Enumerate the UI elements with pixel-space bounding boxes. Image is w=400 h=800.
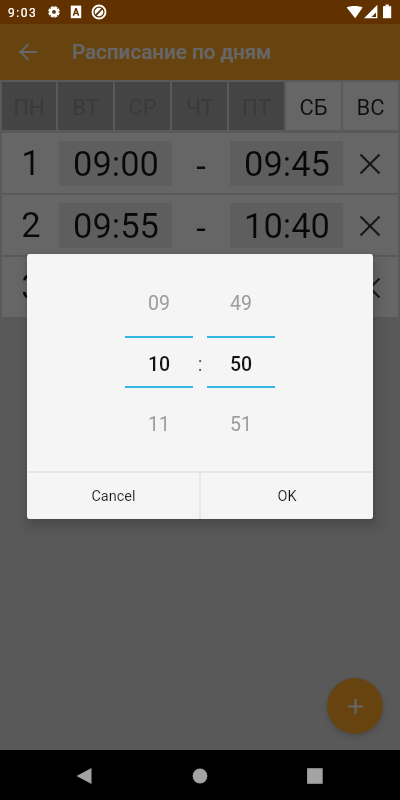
button[interactable]: Delete — [343, 133, 396, 193]
staticText: - — [196, 208, 206, 248]
staticText: 10:40 — [244, 206, 330, 246]
button[interactable]: 09:00 — [59, 141, 172, 186]
button[interactable]: 09:55 — [59, 203, 172, 248]
staticText: 9:03 — [8, 6, 38, 20]
staticText: OK — [277, 488, 297, 505]
staticText: 11 — [125, 413, 193, 436]
staticText: - — [196, 146, 206, 186]
button[interactable]: 10:50 — [59, 265, 172, 310]
button[interactable]: OK — [201, 473, 373, 519]
staticText: 09:45 — [244, 144, 330, 184]
staticText: 3 — [21, 267, 41, 307]
staticText: 09:00 — [73, 144, 159, 184]
button[interactable]: Delete — [343, 195, 396, 255]
staticText: : — [193, 353, 207, 376]
staticText: 10 — [125, 353, 193, 376]
staticText: ВС — [356, 95, 385, 121]
staticText: 09:55 — [73, 206, 159, 246]
staticText: 49 — [207, 292, 275, 315]
button[interactable]: Back — [0, 24, 56, 80]
button[interactable]: Recent apps — [287, 750, 343, 800]
button[interactable]: Back — [56, 750, 112, 800]
staticText: СР — [128, 95, 157, 121]
staticText: 51 — [207, 413, 275, 436]
staticText: Cancel — [91, 488, 136, 505]
button[interactable]: Add — [327, 678, 383, 734]
staticText: 50 — [207, 353, 275, 376]
button[interactable]: 10:40 — [230, 203, 343, 248]
button[interactable]: 09:45 — [230, 141, 343, 186]
button[interactable]: Delete — [343, 257, 396, 317]
button[interactable]: 11:35 — [230, 265, 343, 310]
button[interactable]: ВС — [343, 82, 398, 130]
staticText: ЧТ — [186, 95, 214, 121]
staticText: ВТ — [72, 95, 99, 121]
staticText: Расписание по дням — [72, 40, 272, 64]
staticText: 10:50 — [73, 268, 159, 308]
staticText: 09 — [125, 292, 193, 315]
staticText: СБ — [299, 95, 328, 121]
staticText: 2 — [21, 205, 41, 245]
button[interactable]: СБ — [286, 82, 341, 130]
staticText: 11:35 — [244, 268, 330, 308]
staticText: ПН — [13, 95, 45, 121]
staticText: ПТ — [242, 95, 271, 121]
staticText: 1 — [21, 143, 41, 183]
button[interactable]: Home — [172, 750, 228, 800]
button[interactable]: Cancel — [27, 473, 199, 519]
